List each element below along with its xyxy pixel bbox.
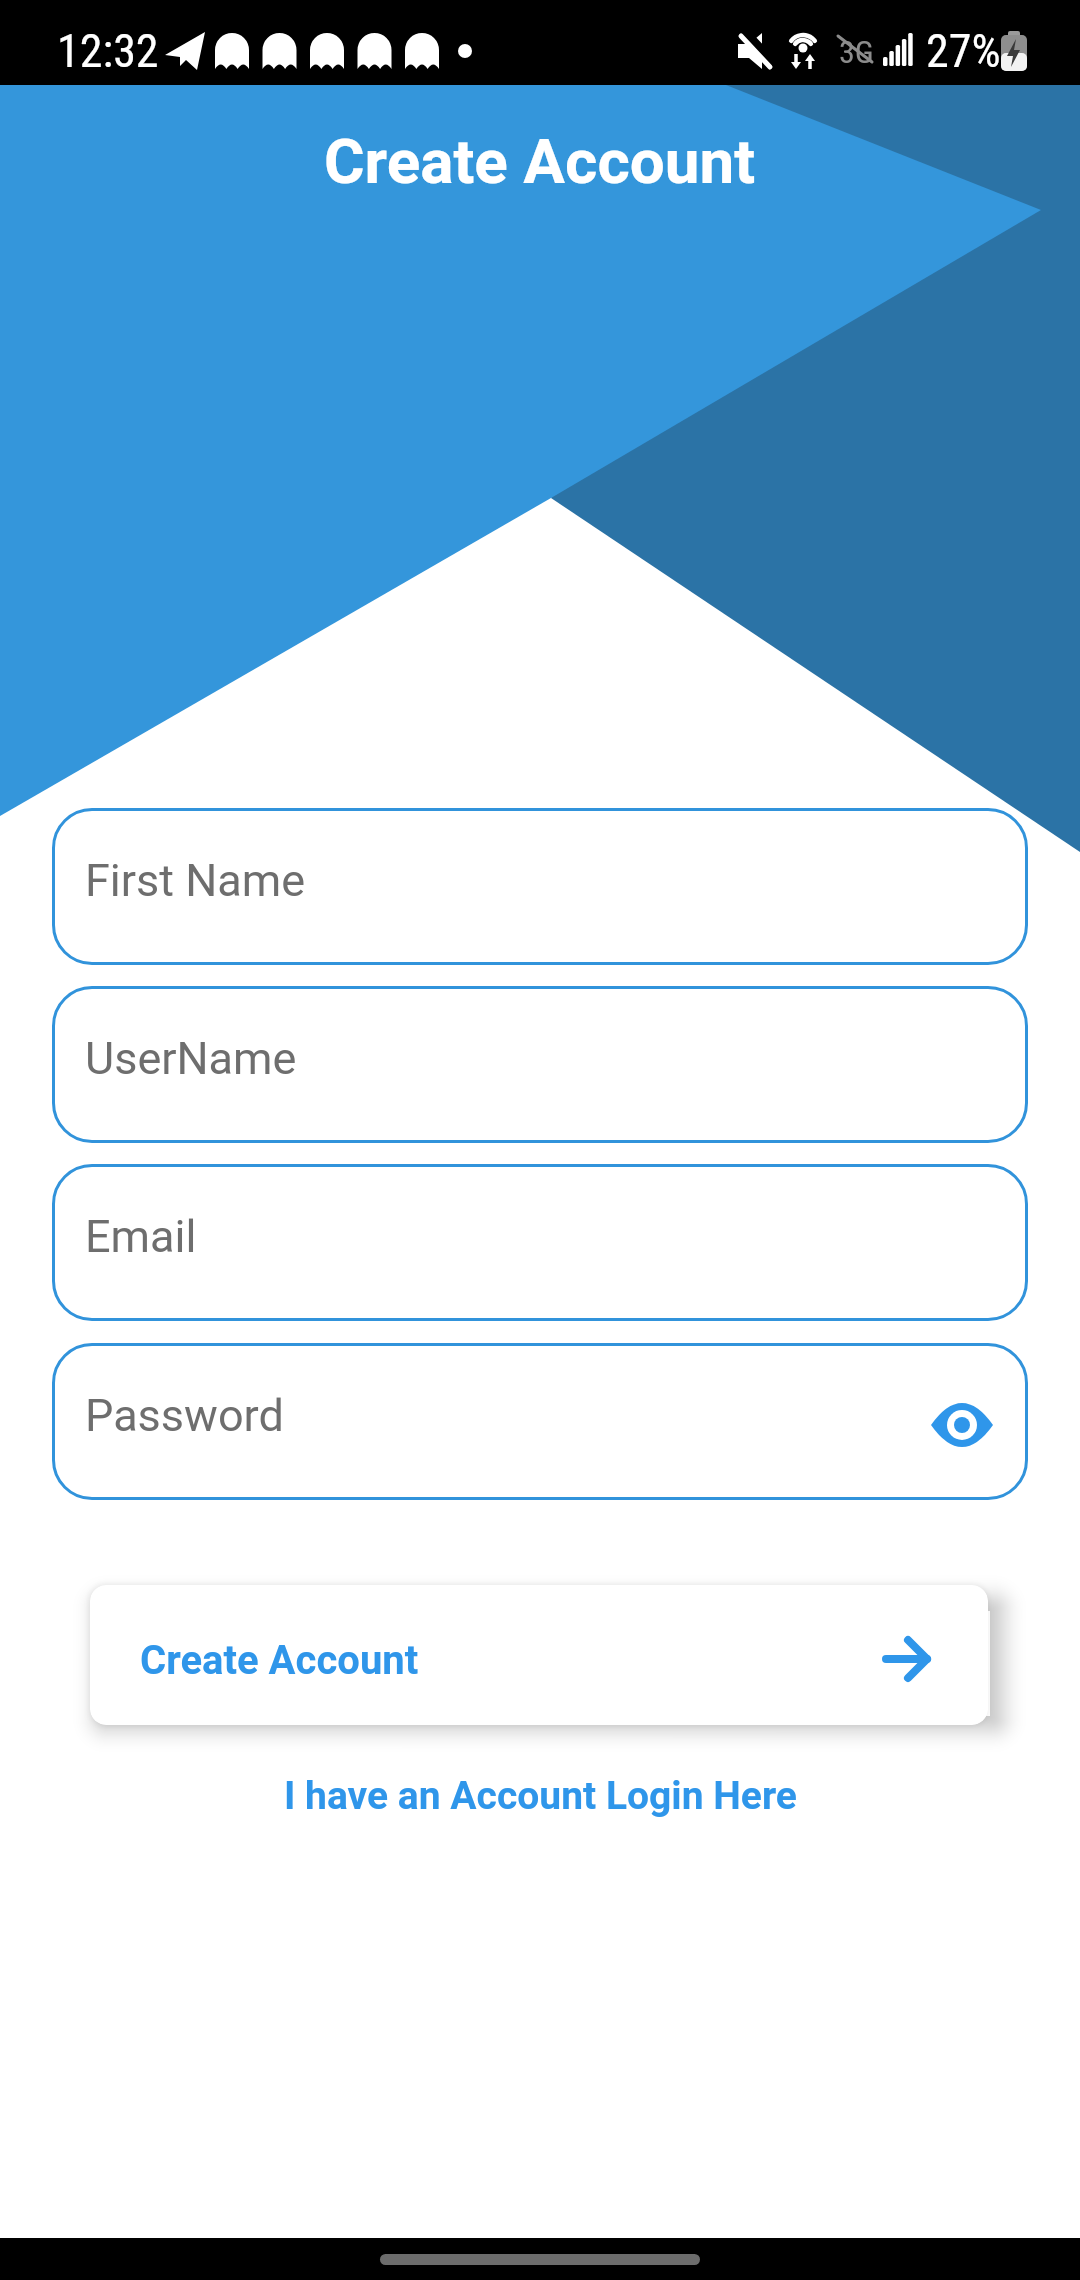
button[interactable]: Create Account: [90, 1585, 988, 1725]
staticText: Email: [85, 1210, 197, 1263]
button[interactable]: Password: [52, 1343, 1028, 1500]
staticText: 27%: [926, 24, 1001, 78]
button[interactable]: UserName: [52, 986, 1028, 1143]
staticText: Create Account: [140, 1637, 419, 1684]
button[interactable]: First Name: [52, 808, 1028, 965]
staticText: First Name: [85, 854, 306, 907]
staticText: 12:32: [57, 24, 159, 78]
button[interactable]: I have an Account Login Here: [284, 1773, 797, 1819]
staticText: Create Account: [324, 125, 756, 198]
staticText: Password: [85, 1389, 284, 1442]
button[interactable]: Email: [52, 1164, 1028, 1321]
staticText: 3G: [839, 33, 874, 71]
staticText: UserName: [85, 1032, 297, 1085]
